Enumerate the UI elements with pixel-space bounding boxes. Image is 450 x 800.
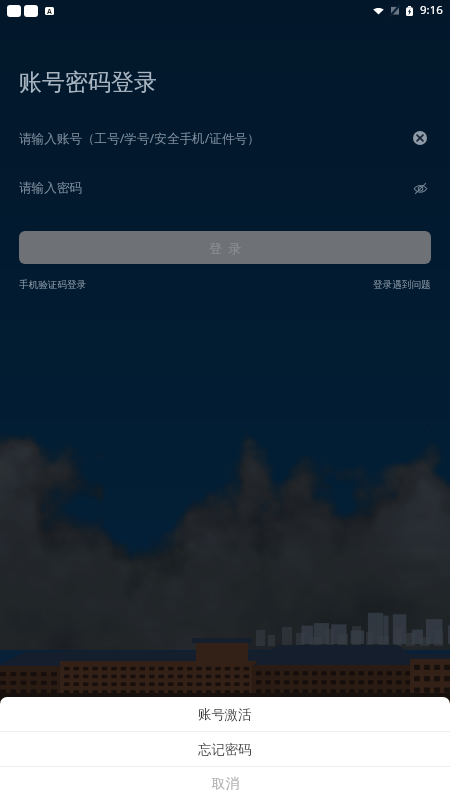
button[interactable]: 账号激活: [0, 697, 450, 731]
button[interactable]: Show password: [409, 177, 431, 199]
other: Clear: [413, 131, 427, 145]
staticText: 账号激活: [198, 706, 252, 723]
button[interactable]: Clear: [409, 127, 431, 149]
button[interactable]: 忘记密码: [0, 732, 450, 766]
staticText: 忘记密码: [198, 741, 252, 758]
staticText: 取消: [212, 775, 239, 792]
other: Show password: [413, 181, 428, 196]
button[interactable]: 取消: [0, 767, 450, 800]
button[interactable]: 手机验证码登录: [19, 279, 87, 291]
staticText: 请输入账号（工号/学号/安全手机/证件号）: [19, 130, 260, 147]
button[interactable]: 登录: [19, 231, 431, 264]
button[interactable]: 登录遇到问题: [373, 279, 431, 291]
staticText: 账号密码登录: [19, 68, 157, 97]
staticText: 登录: [206, 240, 244, 256]
staticText: A: [47, 7, 52, 15]
staticText: 9:16: [420, 2, 443, 18]
staticText: 请输入密码: [19, 180, 82, 196]
